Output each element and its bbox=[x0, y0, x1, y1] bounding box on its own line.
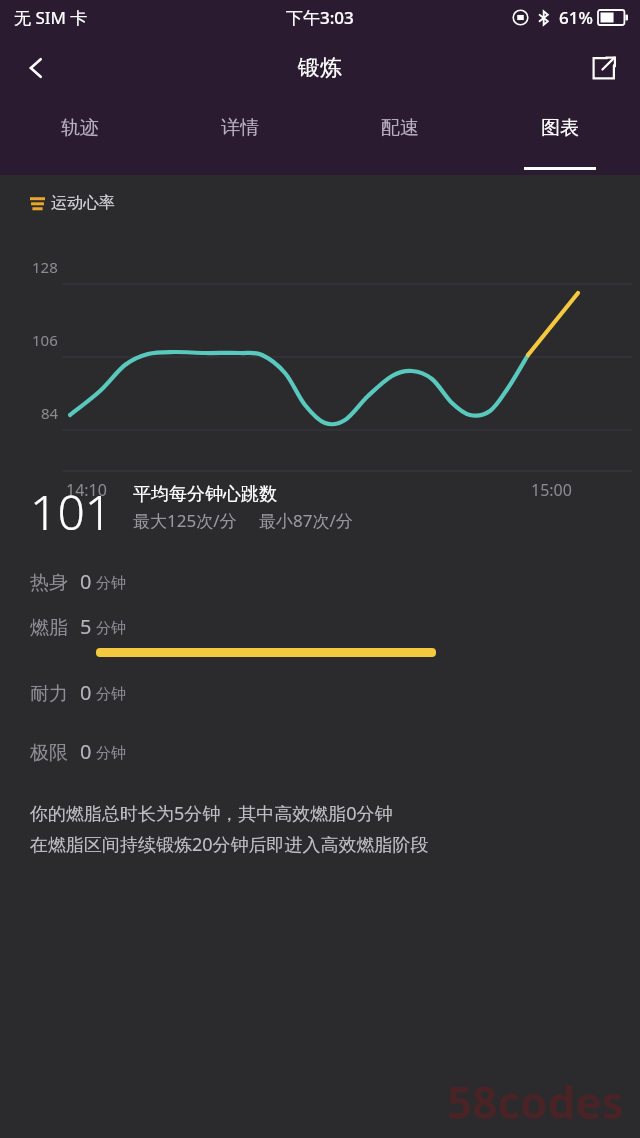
button[interactable]: 极限 bbox=[0, 738, 640, 765]
staticText: 128 bbox=[32, 257, 58, 277]
staticText: 轨迹 bbox=[61, 116, 99, 140]
button[interactable]: Share bbox=[578, 42, 630, 94]
button[interactable]: 轨迹 bbox=[0, 102, 160, 175]
staticText: 图表 bbox=[541, 116, 579, 140]
staticText: 详情 bbox=[221, 116, 259, 140]
button[interactable]: 热身 bbox=[0, 568, 640, 595]
staticText: 无 SIM 卡 bbox=[14, 6, 88, 29]
button[interactable]: 详情 bbox=[160, 102, 320, 175]
staticText: 热身 bbox=[30, 571, 68, 595]
staticText: 14:10 bbox=[66, 479, 107, 501]
staticText: 分钟 bbox=[96, 685, 126, 704]
staticText: 最小87次/分 bbox=[259, 509, 353, 532]
button[interactable]: 耐力 bbox=[0, 679, 640, 706]
staticText: 0 bbox=[80, 738, 92, 765]
staticText: 平均每分钟心跳数 bbox=[133, 483, 277, 506]
staticText: 0 bbox=[80, 568, 92, 595]
staticText: 61% bbox=[559, 6, 593, 29]
staticText: 106 bbox=[32, 330, 58, 350]
staticText: 5 bbox=[80, 613, 92, 640]
staticText: 分钟 bbox=[96, 744, 126, 763]
staticText: 15:00 bbox=[531, 479, 572, 501]
staticText: 下午3:03 bbox=[286, 6, 354, 29]
button[interactable]: 图表 bbox=[480, 102, 640, 175]
staticText: 在燃脂区间持续锻炼20分钟后即进入高效燃脂阶段 bbox=[30, 832, 429, 857]
staticText: 0 bbox=[80, 679, 92, 706]
staticText: 你的燃脂总时长为5分钟，其中高效燃脂0分钟 bbox=[30, 801, 393, 826]
staticText: 分钟 bbox=[96, 574, 126, 593]
button[interactable]: 燃脂 bbox=[0, 613, 640, 657]
staticText: 锻炼 bbox=[298, 54, 342, 82]
staticText: 58codes bbox=[447, 1072, 624, 1132]
staticText: 极限 bbox=[30, 741, 68, 765]
staticText: 84 bbox=[41, 403, 59, 423]
button[interactable]: 配速 bbox=[320, 102, 480, 175]
staticText: 耐力 bbox=[30, 682, 68, 706]
staticText: 燃脂 bbox=[30, 616, 68, 640]
staticText: 配速 bbox=[381, 116, 419, 140]
staticText: 运动心率 bbox=[51, 193, 115, 213]
staticText: 最大125次/分 bbox=[133, 509, 237, 532]
staticText: 分钟 bbox=[96, 619, 126, 638]
staticText: 101 bbox=[30, 479, 113, 544]
button[interactable]: Back bbox=[10, 42, 62, 94]
